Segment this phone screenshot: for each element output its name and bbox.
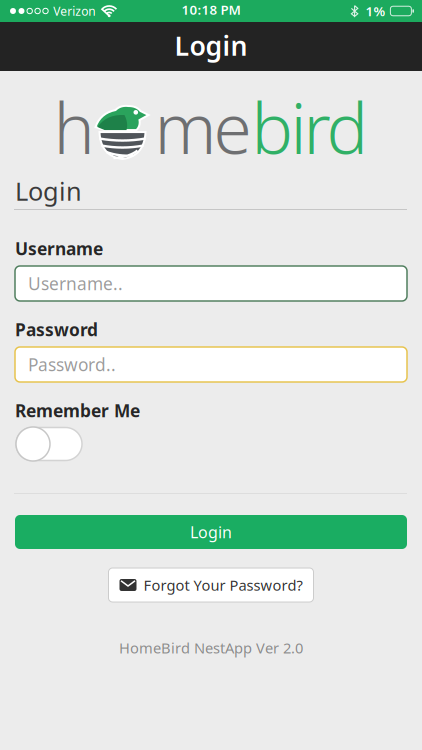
staticText: bird [251, 81, 368, 173]
staticText: 10:18 PM [181, 1, 240, 18]
staticText: Password.. [28, 353, 116, 376]
staticText: Verizon [53, 3, 95, 19]
staticText: Username [15, 237, 103, 260]
staticText: Login [190, 521, 232, 543]
button[interactable]: Username.. [15, 266, 407, 301]
staticText: 1% [365, 2, 385, 20]
staticText: Login [174, 28, 247, 63]
staticText: me [154, 81, 251, 173]
button[interactable]: Password.. [15, 347, 407, 382]
staticText: Remember Me [15, 399, 140, 422]
staticText: Password [15, 318, 98, 341]
button[interactable]: Login [15, 515, 407, 549]
button[interactable]: Forgot Your Password? [108, 568, 313, 602]
staticText: Username.. [28, 272, 123, 295]
staticText: Login [15, 174, 82, 208]
staticText: HomeBird NestApp Ver 2.0 [119, 638, 303, 657]
staticText: Forgot Your Password? [143, 575, 302, 595]
button[interactable]: Remember Me [16, 427, 82, 461]
staticText: h [53, 81, 94, 173]
